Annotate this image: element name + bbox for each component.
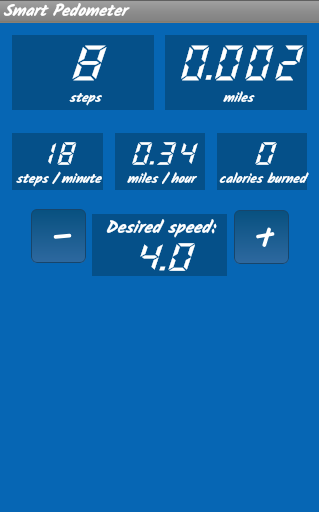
button[interactable]: Decrease desired speed [31, 209, 86, 263]
staticText: 0 [252, 139, 276, 167]
staticText: Smart Pedometer [3, 0, 127, 22]
staticText: steps [69, 88, 101, 109]
staticText: 0.34 [129, 139, 197, 167]
button[interactable]: 18 [12, 133, 103, 190]
staticText: 8 [67, 40, 105, 84]
button[interactable]: 0.34 [115, 133, 205, 190]
staticText: steps / minute [16, 169, 101, 190]
staticText: Desired speed: [105, 215, 215, 242]
staticText: 18 [34, 139, 75, 167]
staticText: miles [223, 88, 253, 109]
staticText: 0.002 [177, 40, 302, 84]
button[interactable]: 0.002 [165, 35, 307, 110]
staticText: 4.0 [132, 239, 194, 273]
staticText: calories burned [219, 169, 306, 190]
button[interactable]: 0 [217, 133, 307, 190]
staticText: miles / hour [127, 169, 195, 190]
button[interactable]: Increase desired speed [234, 210, 289, 264]
button[interactable]: 8 [12, 35, 154, 110]
